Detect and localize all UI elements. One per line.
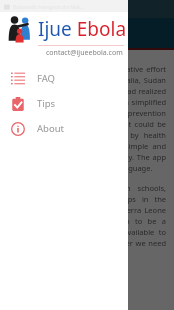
button[interactable]: FAQ bbox=[0, 66, 128, 91]
staticText: Ijue Ebola app is a joint collaborative … bbox=[8, 64, 166, 173]
staticText: FAQ bbox=[37, 72, 56, 85]
staticText: Ijue Ebola bbox=[38, 16, 127, 42]
staticText: Baixando hangout do Mai… bbox=[13, 3, 85, 10]
button[interactable]: Menu bbox=[6, 22, 28, 44]
staticText: The app has been piloted in schools, hos… bbox=[8, 183, 166, 259]
button[interactable]: Tips bbox=[0, 91, 128, 116]
button[interactable]: About bbox=[0, 116, 128, 141]
staticText: contact@ijueebola.com bbox=[46, 48, 123, 58]
staticText: Tips bbox=[37, 97, 56, 110]
staticText: About bbox=[37, 122, 64, 135]
